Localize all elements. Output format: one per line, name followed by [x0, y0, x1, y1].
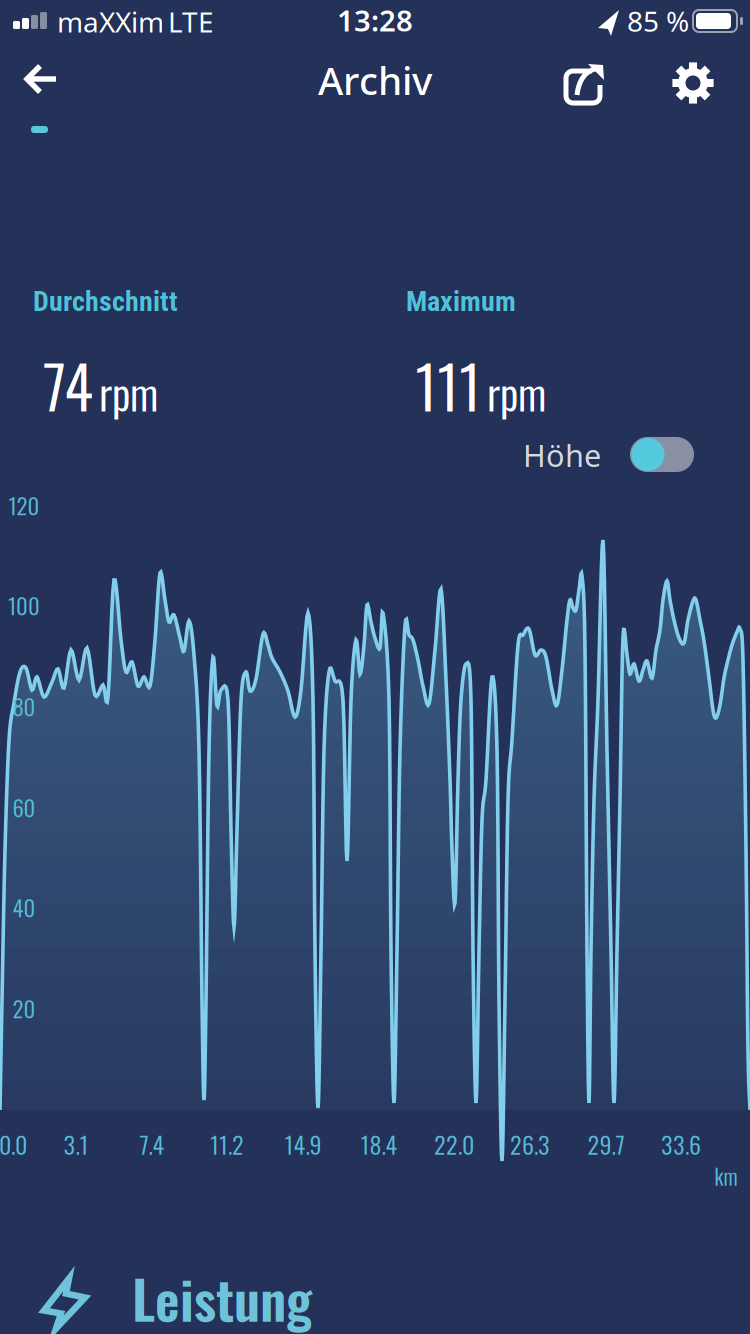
- staticText: 18.4: [360, 1126, 397, 1162]
- staticText: 7.4: [139, 1126, 164, 1162]
- staticText: 20: [12, 991, 35, 1025]
- staticText: Leistung: [132, 1258, 312, 1334]
- button[interactable]: Leistung: [38, 1264, 312, 1334]
- staticText: maXXim: [57, 3, 164, 40]
- staticText: rpm: [487, 361, 546, 424]
- staticText: 26.3: [510, 1126, 550, 1162]
- button[interactable]: Zurück: [23, 62, 59, 96]
- staticText: rpm: [99, 361, 158, 424]
- staticText: Höhe: [523, 435, 601, 475]
- staticText: 85 %: [627, 2, 689, 40]
- staticText: 33.6: [661, 1126, 701, 1162]
- button[interactable]: Höhe: [630, 437, 694, 472]
- staticText: Durchschnitt: [33, 285, 178, 318]
- staticText: 60: [12, 790, 35, 824]
- staticText: 3.1: [63, 1126, 88, 1162]
- staticText: 13:28: [337, 0, 413, 39]
- staticText: 11.2: [210, 1126, 244, 1162]
- staticText: 120: [8, 488, 39, 522]
- staticText: 40: [12, 890, 35, 924]
- button[interactable]: Einstellungen: [670, 60, 716, 106]
- button[interactable]: Teilen: [564, 61, 608, 105]
- staticText: LTE: [168, 3, 214, 40]
- staticText: 29.7: [587, 1126, 624, 1162]
- staticText: 0.0: [0, 1126, 27, 1162]
- staticText: km: [714, 1160, 737, 1192]
- staticText: 74: [43, 340, 93, 429]
- staticText: 80: [12, 689, 35, 723]
- staticText: Archiv: [318, 54, 432, 106]
- staticText: 14.9: [284, 1126, 321, 1162]
- staticText: Maximum: [406, 285, 516, 318]
- staticText: 111: [415, 340, 481, 429]
- staticText: 22.0: [434, 1126, 474, 1162]
- staticText: 100: [8, 588, 40, 622]
